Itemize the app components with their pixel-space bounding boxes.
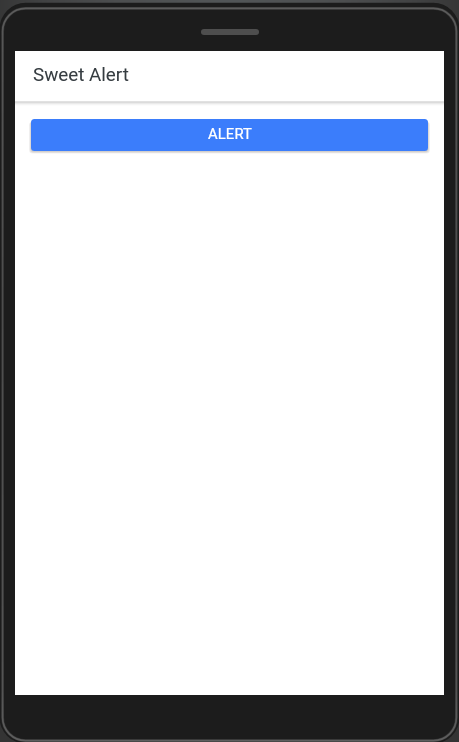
staticText: Sweet Alert	[33, 64, 129, 86]
staticText: Sweet Alert	[33, 64, 129, 86]
other: Earpiece speaker	[201, 29, 259, 35]
staticText: ALERT	[208, 125, 252, 142]
button[interactable]: ALERT	[31, 119, 428, 151]
